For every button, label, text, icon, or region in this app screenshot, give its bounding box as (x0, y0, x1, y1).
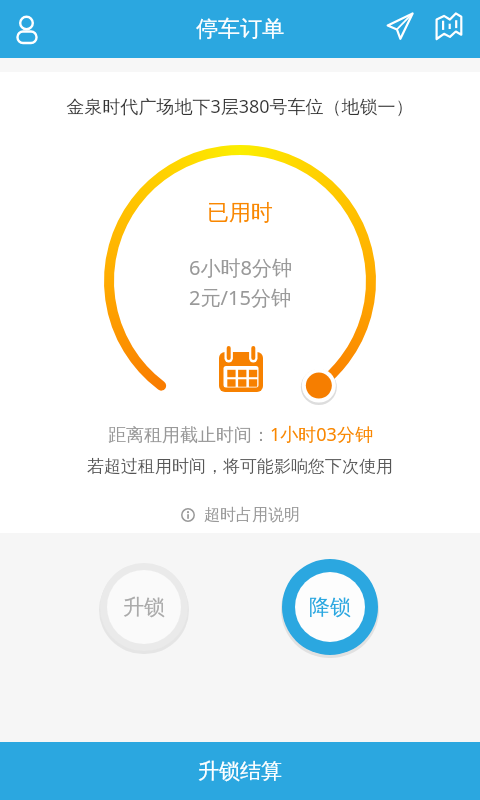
staticText: 若超过租用时间，将可能影响您下次使用 (87, 456, 393, 477)
staticText: 已用时 (207, 199, 273, 227)
button[interactable]: 升锁结算 (0, 742, 480, 800)
button[interactable]: 升锁 (100, 563, 188, 651)
staticText: 金泉时代广场地下3层380号车位（地锁一） (66, 94, 414, 119)
staticText: 降锁 (309, 594, 351, 620)
button[interactable]: 超时占用说明 (0, 505, 480, 525)
staticText: 停车订单 (196, 15, 284, 43)
staticText: 升锁 (123, 594, 165, 620)
button[interactable] (432, 10, 466, 42)
staticText: 2元/15分钟 (189, 284, 291, 311)
staticText: 距离租用截止时间：1小时03分钟 (108, 422, 373, 447)
staticText: 升锁结算 (198, 758, 282, 784)
button[interactable] (383, 8, 419, 42)
staticText: 超时占用说明 (204, 505, 300, 525)
button[interactable] (12, 9, 42, 49)
button[interactable]: 降锁 (282, 559, 378, 655)
staticText: 6小时8分钟 (189, 254, 292, 281)
